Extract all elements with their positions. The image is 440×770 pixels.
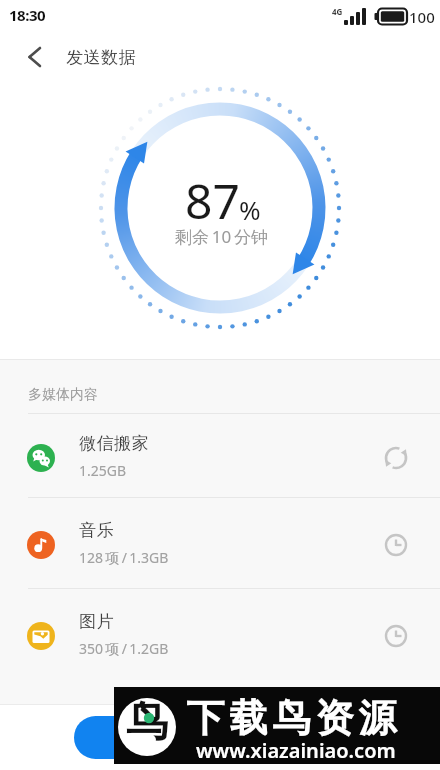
staticText: 128 项 / 1.3GB	[79, 548, 169, 567]
staticText: www.xiazainiao.com	[196, 737, 396, 764]
staticText: 下载鸟资源	[184, 694, 399, 742]
staticText: 音乐	[79, 520, 114, 541]
staticText: 1.25GB	[79, 461, 127, 480]
button[interactable]: 微信搬家	[0, 413, 440, 497]
staticText: 微信搬家	[79, 433, 149, 454]
staticText: %	[239, 192, 261, 227]
staticText: 87	[185, 168, 240, 233]
staticText: 4G	[332, 6, 343, 17]
button[interactable]: 图片	[0, 588, 440, 679]
staticText: 剩余 10 分钟	[175, 225, 269, 248]
button[interactable]	[14, 36, 58, 76]
staticText: 18:30	[9, 5, 46, 25]
staticText: 发送数据	[66, 47, 136, 68]
button[interactable]	[74, 716, 366, 759]
staticText: 图片	[79, 611, 114, 632]
staticText: 350 项 / 1.2GB	[79, 639, 169, 658]
staticText: 100	[409, 7, 435, 27]
button[interactable]: 音乐	[0, 497, 440, 588]
staticText: 鸟	[126, 696, 168, 749]
staticText: 多媒体内容	[28, 386, 98, 404]
